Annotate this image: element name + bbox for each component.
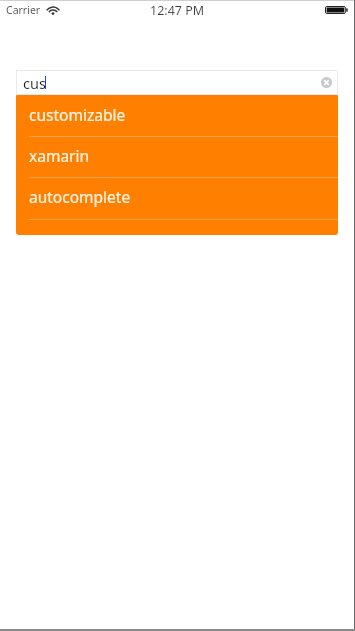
button[interactable]: customizable xyxy=(16,95,338,136)
button[interactable]: cus xyxy=(16,70,338,95)
staticText: Carrier xyxy=(6,3,41,17)
staticText: autocomplete xyxy=(29,186,131,207)
staticText: 12:47 PM xyxy=(150,2,205,19)
other: Battery xyxy=(325,6,348,14)
button[interactable]: autocomplete xyxy=(16,177,338,218)
button[interactable]: Clear text xyxy=(321,77,332,88)
other: Wi-Fi xyxy=(47,6,59,15)
staticText: customizable xyxy=(29,104,126,125)
staticText: cus xyxy=(23,73,46,93)
button[interactable]: xamarin xyxy=(16,136,338,177)
staticText: xamarin xyxy=(29,145,90,166)
